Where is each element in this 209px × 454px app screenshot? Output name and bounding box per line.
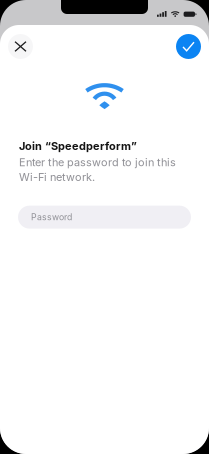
staticText: Password	[31, 212, 72, 222]
staticText: Enter the password to join this Wi-Fi ne…	[19, 156, 176, 184]
button[interactable]: Cancel	[8, 34, 33, 59]
button[interactable]: Join	[176, 34, 201, 59]
staticText: Join “Speedperform”	[19, 139, 137, 153]
